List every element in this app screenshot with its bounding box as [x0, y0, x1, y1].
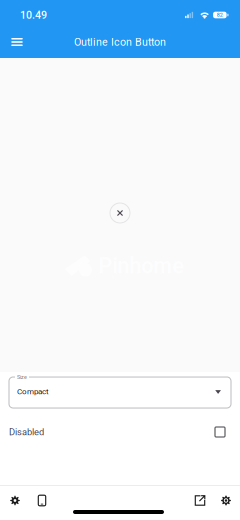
button[interactable]: Menu	[0, 26, 34, 58]
button[interactable]: Compact	[0, 377, 240, 408]
staticText: Size	[17, 374, 27, 380]
button[interactable]: Disabled	[0, 425, 240, 439]
button[interactable]: Close	[110, 203, 130, 223]
button[interactable]: Open in new window	[190, 495, 210, 506]
staticText: Compact	[17, 387, 49, 396]
staticText: 82	[217, 12, 223, 18]
staticText: Disabled	[9, 426, 44, 437]
staticText: 10.49	[20, 9, 47, 21]
button[interactable]: Settings	[5, 495, 25, 506]
button[interactable]: Preferences	[216, 495, 236, 506]
button[interactable]: Device frame	[32, 495, 52, 506]
staticText: Outline Icon Button	[74, 36, 166, 48]
